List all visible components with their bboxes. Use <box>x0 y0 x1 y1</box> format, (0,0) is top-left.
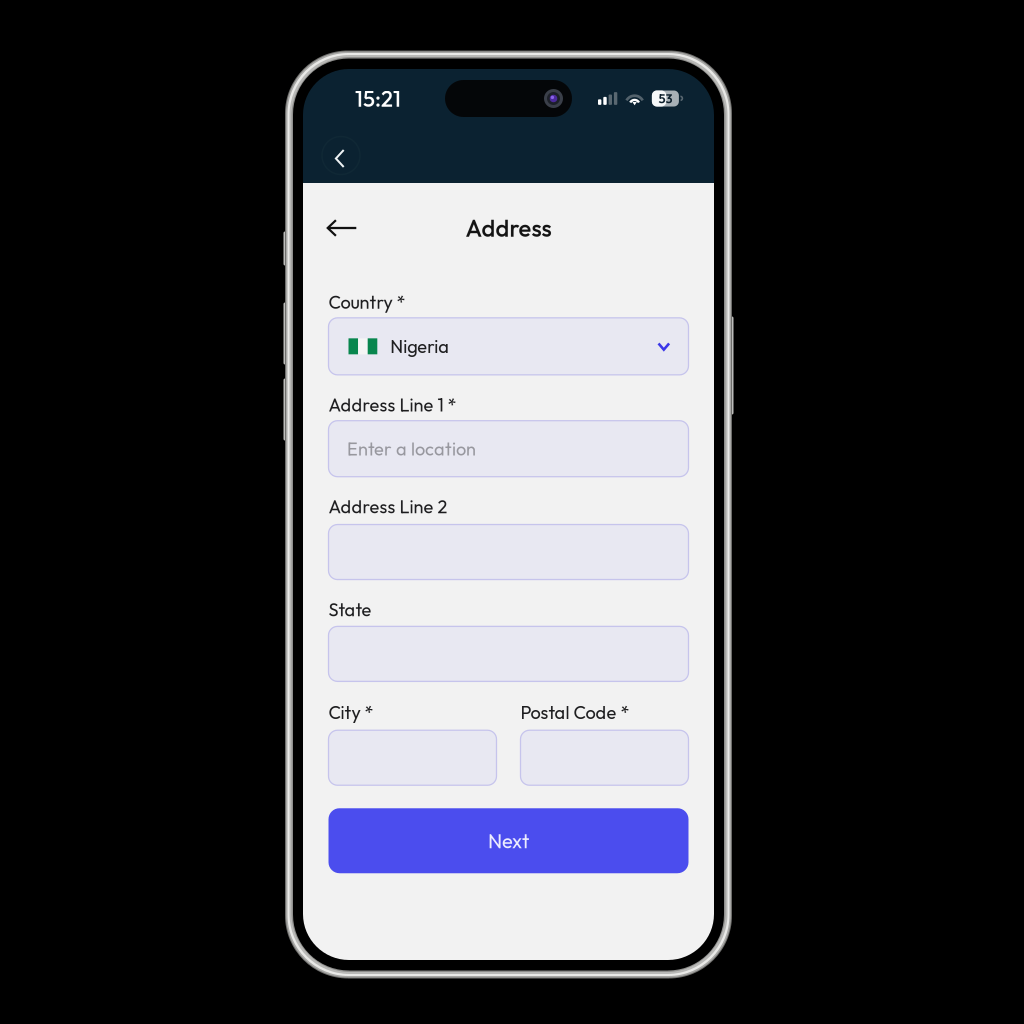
staticText: 53 <box>658 90 672 106</box>
button[interactable]: Nigeria <box>328 318 688 375</box>
staticText: Postal Code * <box>520 701 629 724</box>
staticText: City * <box>328 701 373 724</box>
staticText: Country * <box>328 290 405 313</box>
staticText: Address Line 2 <box>328 495 447 518</box>
staticText: Next <box>488 828 529 853</box>
button[interactable]: Back <box>319 206 365 250</box>
button[interactable]: Next <box>328 808 688 873</box>
staticText: Address Line 1 * <box>328 393 456 416</box>
staticText: Enter a location <box>347 437 476 460</box>
staticText: 15:21 <box>355 85 401 112</box>
staticText: State <box>328 598 371 621</box>
staticText: Nigeria <box>390 335 449 358</box>
staticText: Address <box>465 213 551 243</box>
button[interactable]: Back <box>319 133 363 177</box>
